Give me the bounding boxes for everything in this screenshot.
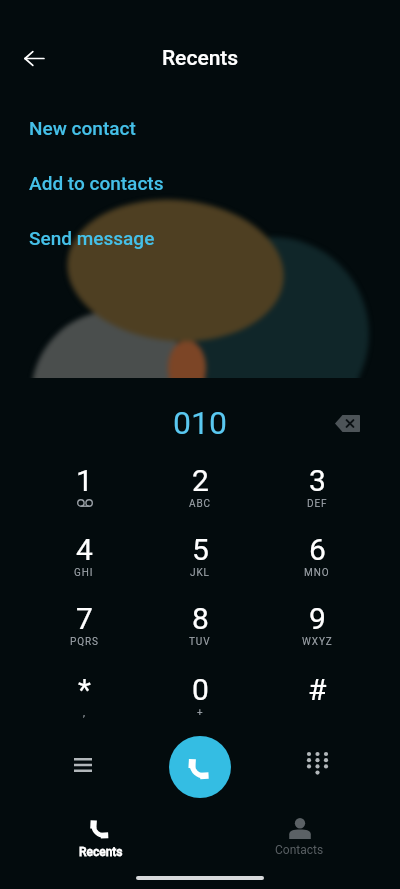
staticText: JKL — [190, 567, 210, 579]
staticText: Send message — [29, 227, 155, 249]
staticText: 2 — [192, 463, 209, 498]
staticText: 8 — [192, 601, 209, 636]
button[interactable]: New contact — [0, 104, 400, 152]
button[interactable]: 8 — [162, 601, 238, 657]
staticText: TUV — [189, 636, 211, 648]
staticText: Contacts — [275, 843, 324, 857]
button[interactable]: Dialpad — [297, 745, 337, 785]
button[interactable]: 5 — [162, 532, 238, 588]
button[interactable]: Add to contacts — [0, 159, 400, 207]
staticText: 4 — [76, 532, 93, 567]
button[interactable]: Backspace — [327, 403, 367, 443]
button[interactable]: 4 — [46, 532, 122, 588]
button[interactable]: 7 — [46, 601, 122, 657]
staticText: 010 — [173, 404, 227, 442]
staticText: 7 — [76, 601, 93, 636]
staticText: New contact — [29, 117, 136, 139]
staticText: * — [78, 672, 91, 707]
staticText: + — [197, 707, 204, 719]
staticText: Recents — [162, 46, 239, 71]
button[interactable]: Back — [14, 38, 54, 78]
staticText: PQRS — [70, 636, 99, 648]
button[interactable]: Recents — [51, 811, 151, 863]
button[interactable]: 1 — [46, 463, 122, 519]
staticText: 6 — [309, 532, 326, 567]
button[interactable]: 3 — [279, 463, 355, 519]
staticText: 3 — [309, 463, 326, 498]
staticText: 9 — [309, 601, 326, 636]
button[interactable]: Call — [169, 736, 231, 798]
button[interactable]: Call log — [63, 745, 103, 785]
button[interactable]: # — [279, 672, 355, 728]
button[interactable]: * — [46, 672, 122, 728]
button[interactable]: Contacts — [249, 811, 349, 863]
staticText: Add to contacts — [29, 172, 164, 194]
staticText: , — [83, 707, 86, 719]
staticText: 5 — [192, 532, 209, 567]
button[interactable]: 0 — [162, 672, 238, 728]
staticText: Recents — [79, 845, 123, 859]
staticText: WXYZ — [302, 636, 333, 648]
button[interactable]: Send message — [0, 214, 400, 262]
staticText: ABC — [189, 498, 211, 510]
button[interactable]: 2 — [162, 463, 238, 519]
staticText: # — [308, 672, 327, 707]
staticText: GHI — [74, 567, 94, 579]
button[interactable]: 9 — [279, 601, 355, 657]
staticText: 0 — [192, 672, 209, 707]
staticText: 1 — [76, 463, 93, 498]
button[interactable]: 6 — [279, 532, 355, 588]
staticText: DEF — [307, 498, 328, 510]
staticText: MNO — [304, 567, 330, 579]
